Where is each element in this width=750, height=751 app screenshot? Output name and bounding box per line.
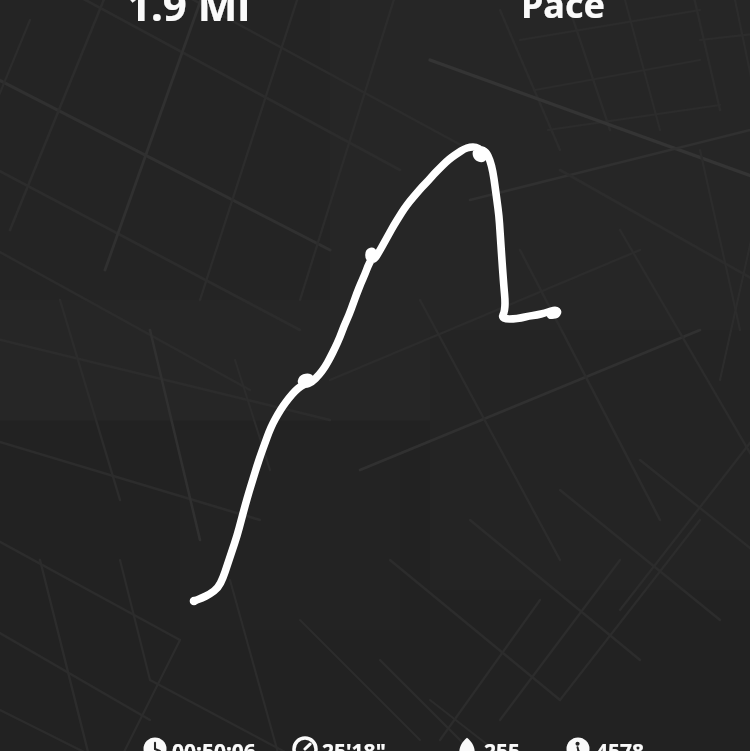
staticText: 1.9 Mi [127,0,250,33]
staticText: 25'18" [322,737,386,751]
button[interactable]: 1.9 Mi [63,0,313,33]
button[interactable]: Pace [438,0,688,29]
staticText: Pace [521,0,605,29]
button[interactable]: 00:50:06 [0,737,750,751]
staticText: 4578 [596,737,645,751]
staticText: 00:50:06 [172,737,256,751]
button[interactable]: Activity route map [0,0,750,751]
staticText: 255 [484,737,521,751]
